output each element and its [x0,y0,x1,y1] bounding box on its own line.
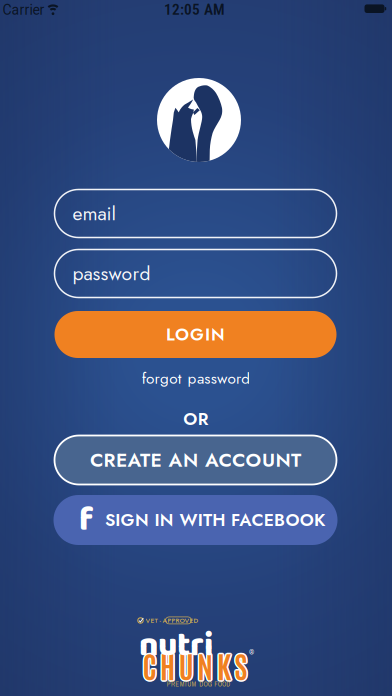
staticText: nutri [139,619,213,672]
staticText: CHUNKS [142,647,247,686]
staticText: CHUNKS [141,644,246,683]
staticText: VET - APPROVED [145,616,198,625]
staticText: password [72,259,150,287]
staticText: CHUNKS [144,646,249,684]
staticText: CHUNKS [142,646,247,684]
staticText: CREATE AN ACCOUNT [90,446,301,474]
button[interactable]: CREATE AN ACCOUNT [54,435,336,484]
button[interactable]: email [54,189,336,237]
button[interactable]: forgot password [116,370,276,386]
staticText: ® [249,649,254,656]
staticText: PREMIUM DOG FOOD [167,679,230,688]
staticText: CHUNKS [141,646,246,684]
staticText: CHUNKS [144,647,249,685]
staticText: CHUNKS [144,644,249,683]
staticText: CHUNKS [142,644,247,683]
staticText: 12:05 AM [164,0,225,18]
button[interactable]: password [54,249,336,297]
button[interactable]: f [53,495,337,545]
staticText: Carrier [2,2,44,18]
staticText: forgot password [142,367,250,390]
button[interactable]: LOGIN [54,311,336,358]
staticText: OR [183,406,209,431]
staticText: LOGIN [166,322,225,347]
staticText: CHUNKS [141,647,246,685]
staticText: SIGN IN WITH FACEBOOK [105,507,325,532]
staticText: f [79,493,93,547]
staticText: email [72,199,115,227]
